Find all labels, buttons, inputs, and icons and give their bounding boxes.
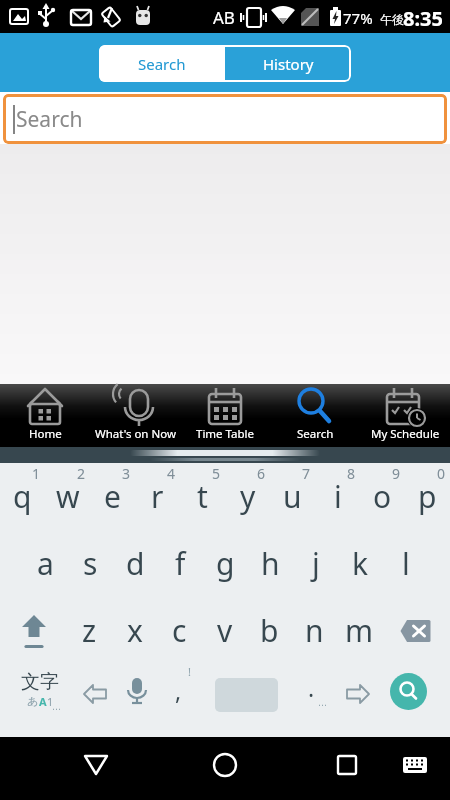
staticText: g — [216, 543, 235, 584]
staticText: e — [104, 476, 121, 517]
button[interactable]: 5 — [180, 463, 225, 530]
button[interactable]: z — [67, 597, 112, 664]
staticText: 0 — [437, 464, 446, 483]
staticText: n — [305, 610, 324, 651]
button[interactable]: c — [157, 597, 202, 664]
button[interactable]: 6 — [225, 463, 270, 530]
staticText: 8:35 — [403, 5, 443, 32]
button[interactable]: f — [158, 530, 203, 597]
staticText: . — [308, 672, 315, 703]
button[interactable]: k — [338, 530, 383, 597]
staticText: Home — [29, 426, 62, 442]
staticText: y — [240, 476, 256, 517]
staticText: 8 — [347, 464, 356, 483]
staticText: 6 — [257, 464, 266, 483]
staticText: z — [82, 610, 97, 651]
button[interactable] — [150, 737, 300, 800]
staticText: w — [56, 476, 80, 517]
button[interactable] — [0, 597, 67, 664]
staticText: 1 — [32, 464, 41, 483]
staticText: k — [352, 543, 369, 584]
staticText: i — [334, 476, 342, 517]
button[interactable] — [300, 737, 450, 800]
staticText: x — [127, 610, 143, 651]
staticText: s — [83, 543, 98, 584]
staticText: l — [402, 543, 410, 584]
staticText: t — [197, 476, 208, 517]
button[interactable]: b — [247, 597, 292, 664]
button[interactable]: v — [202, 597, 247, 664]
button[interactable]: x — [112, 597, 157, 664]
staticText: p — [418, 476, 437, 517]
staticText: 3 — [122, 464, 131, 483]
button[interactable]: d — [113, 530, 158, 597]
staticText: What's on Now — [95, 426, 176, 442]
button[interactable]: 7 — [270, 463, 315, 530]
staticText: AB — [213, 6, 235, 29]
button[interactable]: n — [292, 597, 337, 664]
staticText: r — [151, 476, 164, 517]
button[interactable]: 4 — [135, 463, 180, 530]
button[interactable]: s — [68, 530, 113, 597]
staticText: 9 — [392, 464, 401, 483]
button[interactable]: m — [337, 597, 382, 664]
button[interactable]: a — [22, 530, 68, 597]
button[interactable]: 8 — [315, 463, 360, 530]
staticText: b — [260, 610, 279, 651]
staticText: Search — [297, 426, 334, 442]
button[interactable]: Home — [0, 384, 90, 447]
staticText: a — [37, 543, 54, 584]
button[interactable]: What's on Now — [90, 384, 180, 447]
button[interactable] — [338, 674, 378, 714]
staticText: Time Table — [196, 426, 255, 442]
staticText: ! — [188, 664, 191, 679]
staticText: q — [13, 476, 32, 517]
staticText: , — [175, 675, 182, 706]
button[interactable] — [118, 674, 156, 714]
button[interactable] — [390, 673, 427, 710]
button[interactable] — [75, 674, 115, 714]
staticText: 5 — [212, 464, 221, 483]
staticText: h — [261, 543, 280, 584]
staticText: 77% — [343, 8, 373, 28]
staticText: 文字 — [21, 670, 59, 694]
button[interactable]: l — [383, 530, 428, 597]
staticText: f — [175, 543, 186, 584]
staticText: v — [217, 610, 233, 651]
staticText: 4 — [167, 464, 176, 483]
button[interactable]: 9 — [360, 463, 405, 530]
staticText: My Schedule — [371, 426, 440, 442]
button[interactable]: 文字 — [8, 670, 72, 722]
staticText: 2 — [77, 464, 86, 483]
staticText: 午後 — [380, 12, 404, 27]
staticText: m — [345, 610, 374, 651]
staticText: ⋯ — [318, 700, 327, 710]
button[interactable]: j — [293, 530, 338, 597]
button[interactable]: h — [248, 530, 293, 597]
button[interactable]: Search — [3, 94, 447, 144]
button[interactable]: Search — [270, 384, 360, 447]
staticText: ⋯ — [52, 704, 61, 714]
button[interactable]: 3 — [90, 463, 135, 530]
button[interactable]: 0 — [405, 463, 450, 530]
staticText: A — [39, 694, 47, 709]
staticText: 1 — [47, 694, 54, 709]
button[interactable]: History — [225, 45, 351, 82]
staticText: o — [373, 476, 392, 517]
staticText: c — [172, 610, 187, 651]
button[interactable]: Time Table — [180, 384, 270, 447]
staticText: Search — [16, 105, 83, 134]
button[interactable]: My Schedule — [360, 384, 450, 447]
staticText: あ — [27, 694, 39, 708]
button[interactable]: g — [203, 530, 248, 597]
button[interactable]: 1 — [0, 463, 45, 530]
staticText: d — [126, 543, 145, 584]
button[interactable]: Search — [99, 45, 225, 82]
staticText: u — [283, 476, 302, 517]
button[interactable]: 2 — [45, 463, 90, 530]
staticText: Search — [138, 54, 186, 74]
staticText: History — [263, 54, 314, 74]
button[interactable] — [0, 737, 150, 800]
button[interactable] — [382, 597, 450, 664]
